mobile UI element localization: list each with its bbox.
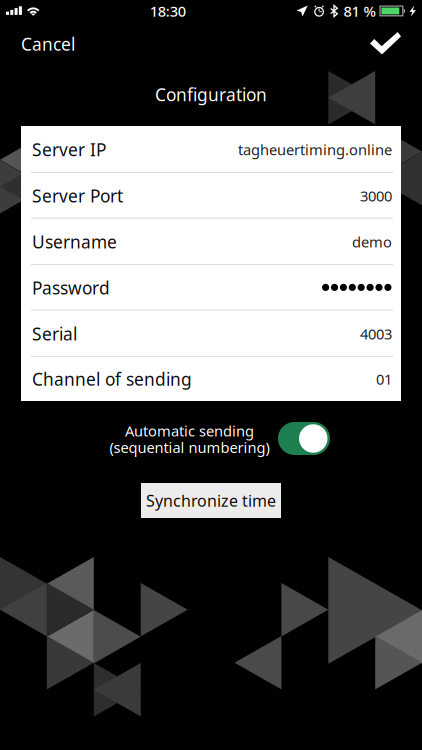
- button[interactable]: Channel of sending: [21, 357, 401, 401]
- staticText: Server IP: [32, 138, 106, 161]
- button[interactable]: Server Port: [21, 173, 401, 219]
- button[interactable]: Password: [21, 265, 401, 311]
- button[interactable]: Username: [21, 219, 401, 265]
- staticText: Cancel: [21, 32, 75, 55]
- staticText: 4003: [360, 324, 392, 343]
- staticText: 01: [376, 369, 392, 389]
- button[interactable]: Cancel: [21, 35, 89, 53]
- staticText: Configuration: [155, 83, 267, 106]
- staticText: (sequential numbering): [109, 437, 269, 457]
- staticText: 18:30: [150, 1, 186, 21]
- staticText: demo: [352, 232, 392, 252]
- staticText: Automatic sending: [125, 421, 254, 440]
- button[interactable]: Serial: [21, 311, 401, 357]
- staticText: tagheuertiming.online: [238, 140, 392, 159]
- staticText: Password: [32, 276, 110, 299]
- button[interactable]: Synchronize time: [141, 483, 281, 518]
- button[interactable]: Automatic sending, on: [278, 422, 330, 455]
- staticText: Server Port: [32, 184, 123, 207]
- staticText: Synchronize time: [146, 490, 276, 511]
- staticText: Serial: [32, 322, 77, 345]
- button[interactable]: Server IP: [21, 126, 401, 173]
- staticText: Channel of sending: [32, 367, 192, 390]
- staticText: 3000: [360, 186, 392, 206]
- button[interactable]: Confirm: [370, 32, 401, 54]
- staticText: Username: [32, 230, 117, 253]
- staticText: 81 %: [343, 1, 375, 21]
